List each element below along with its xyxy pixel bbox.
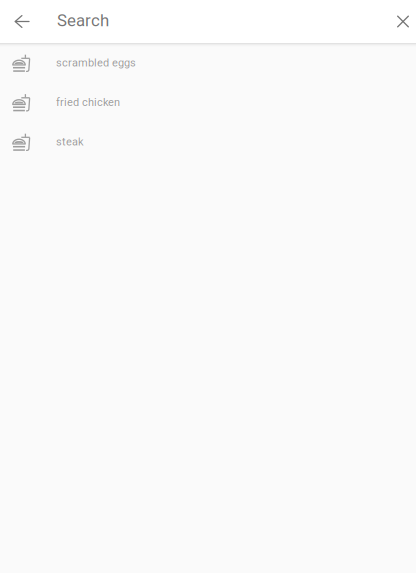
button[interactable]: steak [0, 122, 416, 161]
button[interactable]: scrambled eggs [0, 43, 416, 82]
button[interactable]: Back [5, 0, 39, 43]
staticText: steak [56, 135, 84, 148]
staticText: Search [57, 11, 109, 30]
staticText: scrambled eggs [56, 56, 136, 69]
staticText: fried chicken [56, 96, 120, 109]
button[interactable]: Clear search [390, 0, 416, 43]
button[interactable]: fried chicken [0, 82, 416, 122]
